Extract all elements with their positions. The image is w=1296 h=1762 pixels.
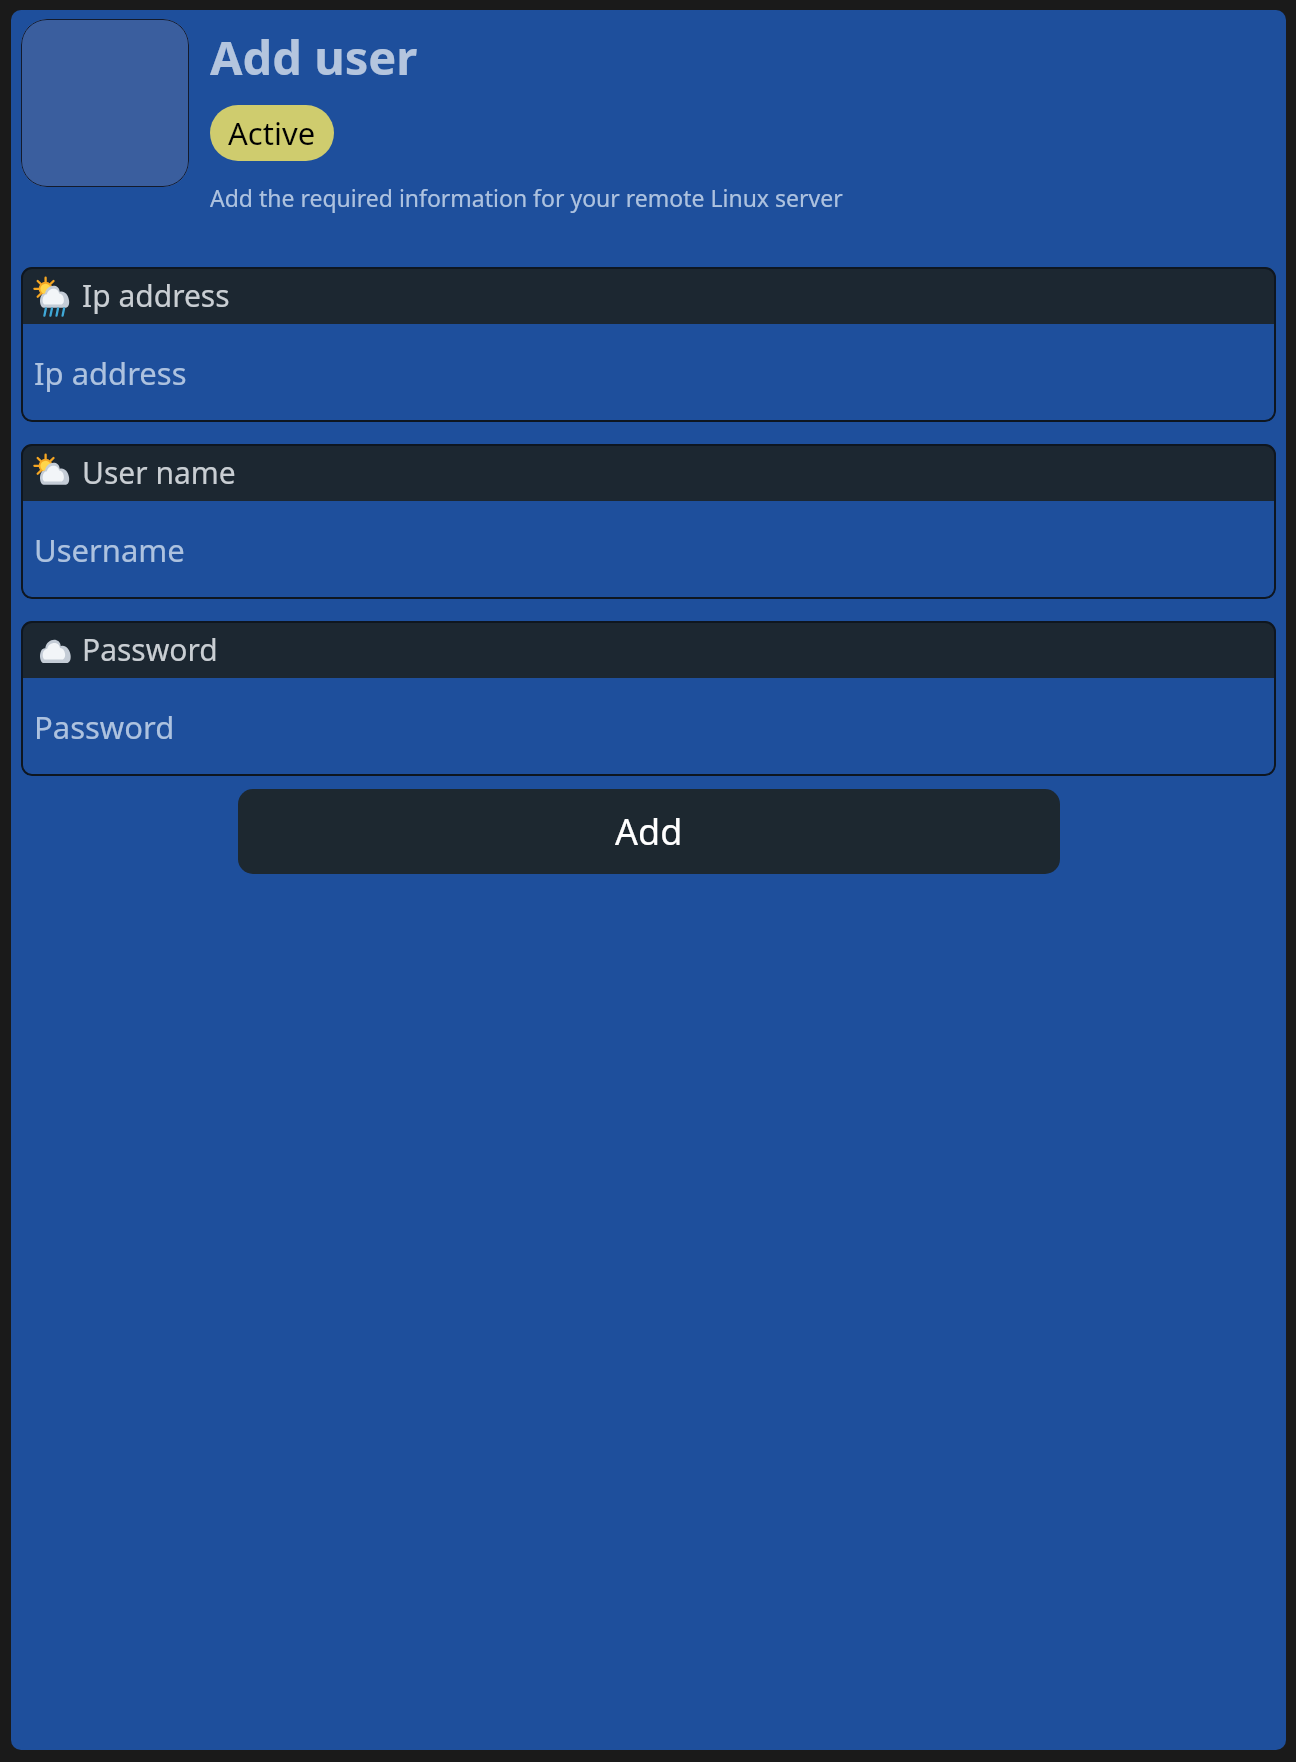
button[interactable]: User image (21, 19, 189, 187)
staticText: User name (82, 452, 236, 493)
button[interactable]: User name (21, 444, 1276, 599)
staticText: Ip address (34, 352, 187, 394)
staticText: Add user (210, 25, 418, 89)
staticText: Add the required information for your re… (210, 182, 843, 213)
staticText: Active (228, 112, 316, 154)
button[interactable]: Ip address (21, 267, 1276, 422)
staticText: Ip address (82, 275, 230, 316)
staticText: Username (34, 529, 185, 571)
button[interactable]: Add (238, 789, 1060, 874)
staticText: Password (82, 629, 218, 670)
staticText: Password (34, 706, 175, 748)
staticText: Add (615, 807, 683, 856)
button[interactable]: Password (21, 621, 1276, 776)
button[interactable]: Active (210, 105, 334, 161)
